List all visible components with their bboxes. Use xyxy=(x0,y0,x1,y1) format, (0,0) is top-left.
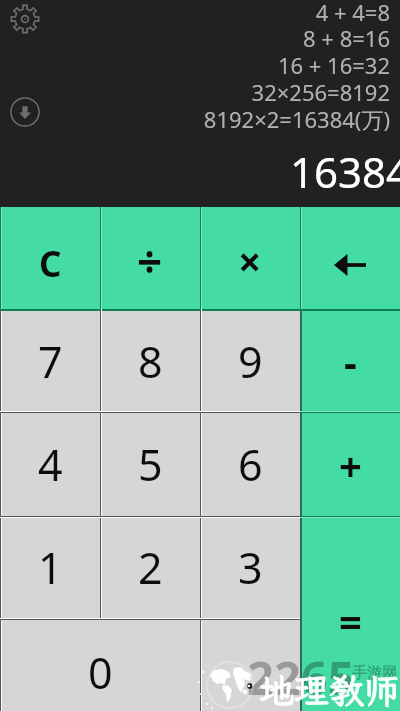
button[interactable]: 7 xyxy=(0,309,100,413)
staticText: 7 xyxy=(38,332,63,391)
staticText: 9 xyxy=(238,332,263,391)
staticText: = xyxy=(339,594,362,648)
staticText: + xyxy=(339,438,362,492)
button[interactable]: 9 xyxy=(200,309,300,413)
button[interactable]: 3 xyxy=(200,516,300,619)
button[interactable]: C xyxy=(0,207,100,309)
staticText: 4 xyxy=(38,435,63,494)
button[interactable]: - xyxy=(300,309,400,413)
button[interactable]: 2 xyxy=(100,516,200,619)
button[interactable]: 1 xyxy=(0,516,100,619)
button[interactable]: 5 xyxy=(100,413,200,516)
staticText: C xyxy=(39,240,62,288)
button[interactable]: ÷ xyxy=(100,207,200,309)
staticText: 3 xyxy=(238,538,263,597)
staticText: 6 xyxy=(238,435,263,494)
button[interactable]: + xyxy=(300,413,400,516)
button[interactable]: 0 xyxy=(0,619,200,711)
button[interactable]: × xyxy=(200,207,300,309)
staticText: . xyxy=(244,643,256,702)
button[interactable]: 4 xyxy=(0,413,100,516)
staticText: × xyxy=(238,233,262,289)
staticText: 2 xyxy=(138,538,163,597)
staticText: 4 + 4=8 8 + 8=16 16 + 16=32 32×256=8192 … xyxy=(0,0,390,135)
button[interactable]: = xyxy=(300,516,400,711)
staticText: 5 xyxy=(138,435,163,494)
staticText: 2265 xyxy=(247,645,355,709)
staticText: - xyxy=(344,334,357,388)
staticText: 手游网 xyxy=(352,664,397,683)
button[interactable]: 8 xyxy=(100,309,200,413)
button[interactable]: Settings xyxy=(10,4,40,34)
button[interactable]: . xyxy=(200,619,300,711)
staticText: 1 xyxy=(38,538,63,597)
staticText: 0 xyxy=(88,643,113,702)
button[interactable]: Backspace xyxy=(300,207,400,309)
other: Backspace xyxy=(334,254,366,276)
staticText: ÷ xyxy=(137,231,163,291)
staticText: 地理教师 xyxy=(259,667,400,711)
button[interactable]: 6 xyxy=(200,413,300,516)
staticText: 8 xyxy=(138,332,163,391)
button[interactable]: History xyxy=(10,97,40,127)
staticText: 16384 xyxy=(289,143,400,200)
